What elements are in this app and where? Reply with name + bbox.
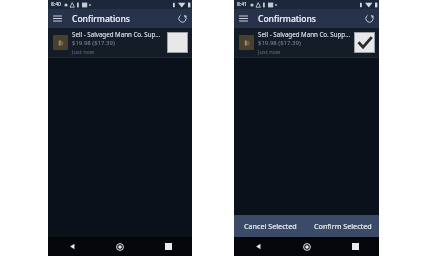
staticText: Confirmations xyxy=(72,13,130,25)
staticText: $19.98 ($17.39) xyxy=(258,39,301,47)
staticText: Just now xyxy=(72,48,95,56)
button[interactable]: Selected xyxy=(354,32,375,53)
button[interactable]: Sell - Salvaged Mann Co. Suppl... xyxy=(48,28,192,57)
button[interactable]: Refresh xyxy=(173,9,192,28)
staticText: $19.98 ($17.39) xyxy=(72,39,115,47)
button[interactable]: Sell - Salvaged Mann Co. Suppl... xyxy=(234,28,379,57)
button[interactable]: Open navigation menu xyxy=(48,9,67,28)
staticText: Confirm Selected xyxy=(314,221,372,231)
button[interactable]: Recent apps xyxy=(331,237,379,256)
staticText: 8:40 xyxy=(51,1,61,8)
button[interactable]: Confirm Selected xyxy=(306,215,379,237)
button[interactable]: Back xyxy=(234,237,283,256)
staticText: Cancel Selected xyxy=(244,221,297,231)
button[interactable]: Back xyxy=(48,237,96,256)
staticText: Just now xyxy=(258,48,281,56)
button[interactable]: Refresh xyxy=(360,9,379,28)
staticText: Confirmations xyxy=(258,13,316,25)
staticText: Sell - Salvaged Mann Co. Suppl... xyxy=(258,30,351,38)
button[interactable]: Open navigation menu xyxy=(234,9,253,28)
button[interactable]: Home xyxy=(283,237,331,256)
staticText: 8:41 xyxy=(237,1,247,8)
button[interactable]: Home xyxy=(96,237,144,256)
button[interactable]: Recent apps xyxy=(144,237,192,256)
button[interactable]: Cancel Selected xyxy=(234,215,306,237)
button[interactable]: Select item xyxy=(167,32,188,53)
staticText: Sell - Salvaged Mann Co. Suppl... xyxy=(72,30,164,38)
